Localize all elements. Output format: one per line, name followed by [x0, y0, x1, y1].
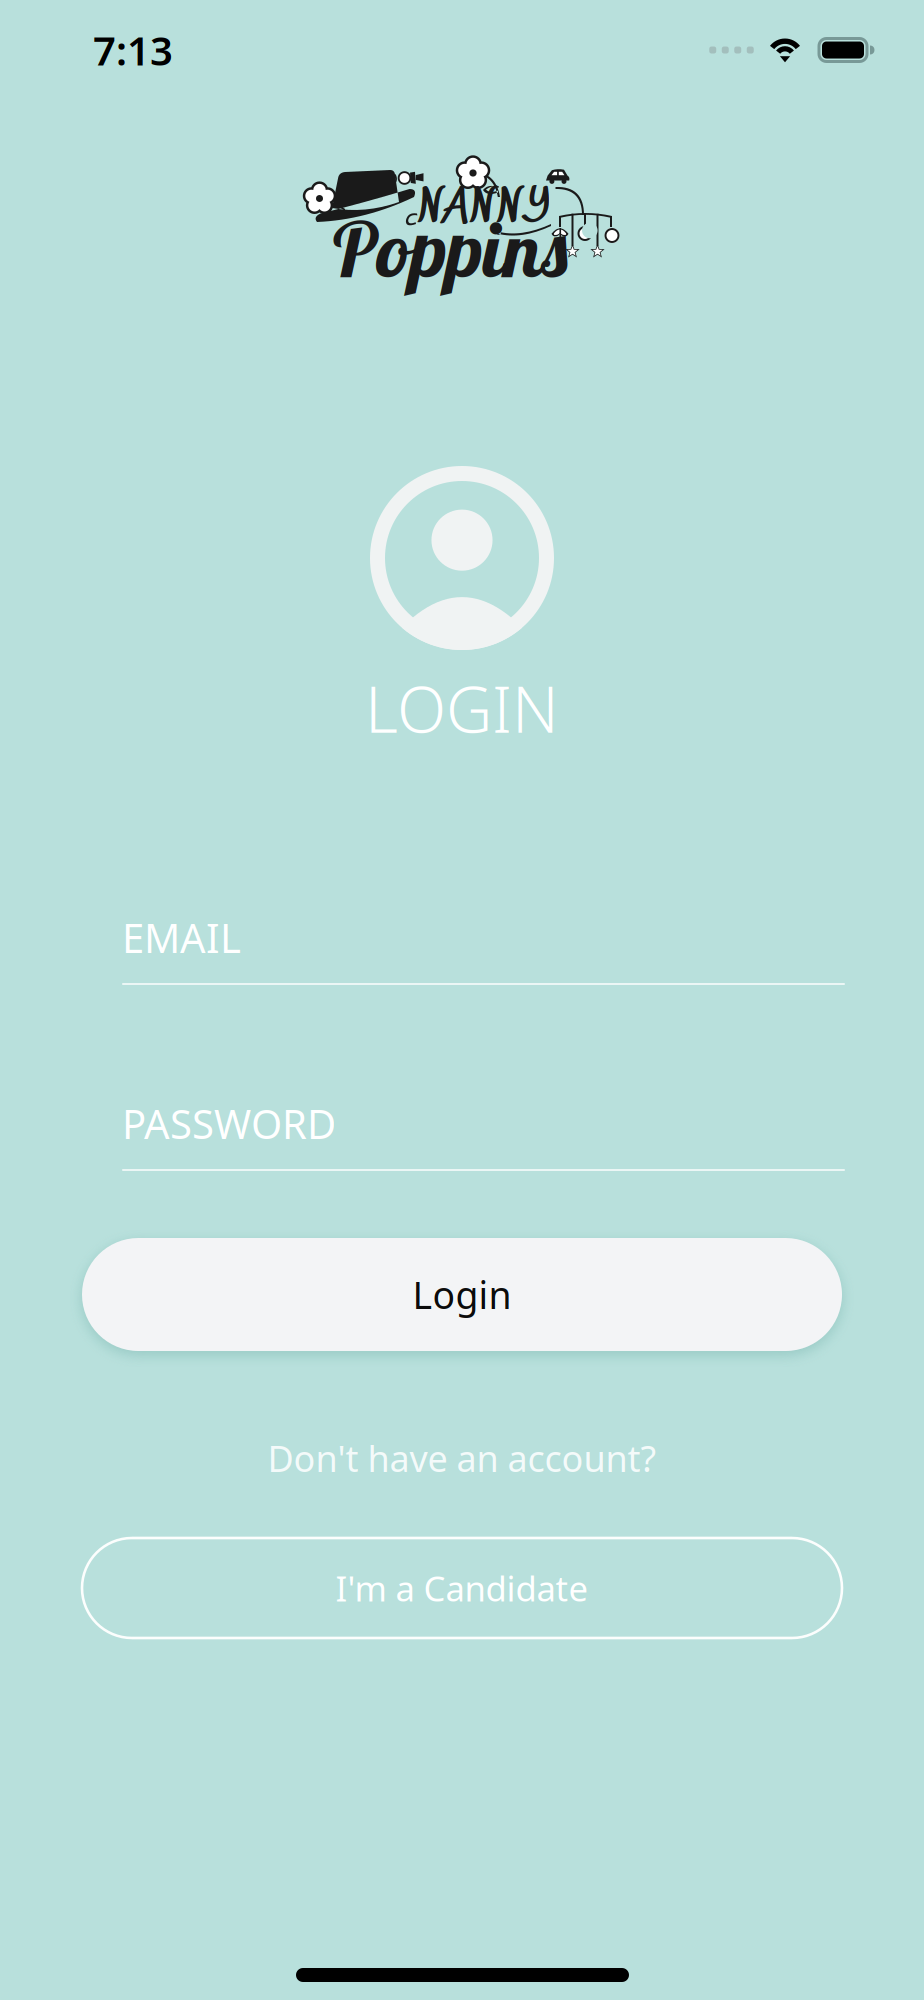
staticText: Login [412, 1270, 511, 1319]
staticText: PASSWORD [122, 1097, 336, 1150]
staticText: LOGIN [365, 665, 559, 750]
staticText: Poppins [333, 200, 567, 297]
staticText: Don't have an account? [267, 1434, 656, 1482]
button[interactable]: EMAIL [122, 911, 845, 985]
button[interactable]: PASSWORD [122, 1097, 845, 1171]
button[interactable]: Login [82, 1238, 842, 1351]
staticText: 7:13 [93, 23, 173, 76]
staticText: EMAIL [122, 911, 241, 964]
staticText: NANNY [417, 182, 550, 237]
staticText: I'm a Candidate [335, 1565, 588, 1611]
button[interactable]: I'm a Candidate [82, 1538, 842, 1638]
